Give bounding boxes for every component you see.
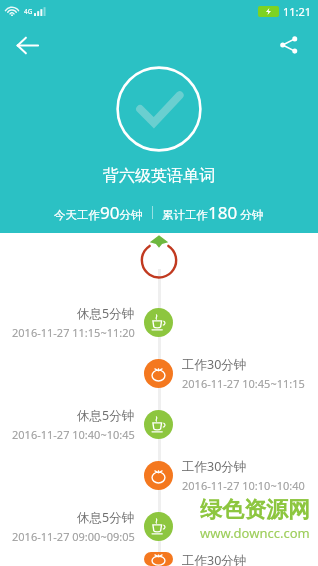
staticText: 工作30分钟 <box>182 552 247 566</box>
other: Rest session <box>144 512 173 541</box>
staticText: 休息5分钟 <box>77 407 135 424</box>
button[interactable]: Work session <box>0 450 318 501</box>
staticText: 休息5分钟 <box>77 305 135 322</box>
staticText: 绿色资源网 <box>200 496 310 524</box>
staticText: 累计工作180 分钟 <box>162 201 264 224</box>
other: Work session <box>144 461 173 490</box>
other: Rest session <box>144 410 173 439</box>
staticText: 2016-11-27 10:10~10:40 <box>182 478 305 493</box>
button[interactable]: 休息5分钟 <box>0 297 318 348</box>
button[interactable]: 休息5分钟 <box>0 399 318 450</box>
other: Work session <box>144 552 173 566</box>
staticText: 今天工作90分钟 <box>54 201 143 224</box>
staticText: 11:21 <box>283 4 312 19</box>
staticText: www.downcc.com <box>200 524 310 542</box>
staticText: 背六级英语单词 <box>103 166 215 186</box>
other: Rest session <box>144 308 173 337</box>
button[interactable]: Work session <box>0 552 318 566</box>
button[interactable]: Work session <box>0 348 318 399</box>
staticText: 2016-11-27 10:45~11:15 <box>182 376 305 391</box>
staticText: 工作30分钟 <box>182 356 247 373</box>
staticText: 2016-11-27 09:00~09:05 <box>12 529 135 544</box>
button[interactable]: Back <box>6 24 48 66</box>
other: Work session <box>144 359 173 388</box>
button[interactable]: Share <box>268 24 310 66</box>
staticText: 工作30分钟 <box>182 458 247 475</box>
staticText: 休息5分钟 <box>77 509 135 526</box>
staticText: 2016-11-27 11:15~11:20 <box>12 325 135 340</box>
staticText: 4G <box>24 7 33 16</box>
button[interactable]: 休息5分钟 <box>0 501 318 552</box>
staticText: 2016-11-27 10:40~10:45 <box>12 427 135 442</box>
